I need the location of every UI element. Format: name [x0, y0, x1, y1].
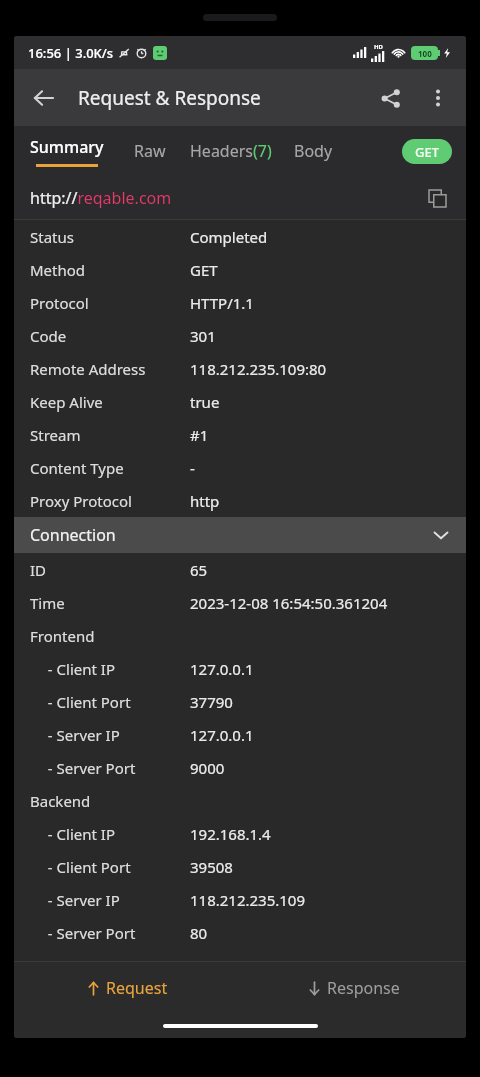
button[interactable]: Connection [14, 517, 466, 553]
staticText: 118.212.235.109 [190, 890, 306, 910]
staticText: Status [30, 227, 190, 247]
button[interactable]: GET [402, 139, 452, 164]
staticText: ID [30, 560, 190, 580]
staticText: - Server Port [40, 758, 190, 778]
button[interactable]: Keep Alive [14, 385, 466, 418]
staticText: 127.0.0.1 [190, 725, 254, 745]
staticText: Frontend [30, 626, 95, 646]
staticText: - Client IP [40, 824, 190, 844]
staticText: - Server IP [40, 890, 190, 910]
staticText: Content Type [30, 458, 190, 478]
button[interactable]: Request [14, 962, 240, 1014]
staticText: HTTP/1.1 [190, 293, 254, 313]
button[interactable]: Status [14, 220, 466, 253]
staticText: Method [30, 260, 190, 280]
staticText: - Client IP [40, 659, 190, 679]
button[interactable]: Summary [14, 136, 120, 167]
staticText: 9000 [190, 758, 225, 778]
staticText: #1 [190, 425, 209, 445]
button[interactable]: Protocol [14, 286, 466, 319]
staticText: GET [190, 260, 218, 280]
staticText: Proxy Protocol [30, 491, 190, 511]
staticText: Completed [190, 227, 268, 247]
staticText: Remote Address [30, 359, 190, 379]
button[interactable]: Share [366, 74, 414, 122]
button[interactable]: - Server IP [14, 718, 466, 751]
button[interactable]: Proxy Protocol [14, 484, 466, 517]
staticText: HD [374, 43, 383, 51]
staticText: Backend [30, 791, 91, 811]
staticText: Request [106, 977, 168, 999]
staticText: Raw [134, 140, 166, 162]
staticText: 39508 [190, 857, 233, 877]
button[interactable]: - Server IP [14, 883, 466, 916]
button[interactable]: Back [22, 76, 66, 120]
button[interactable]: Method [14, 253, 466, 286]
button[interactable]: - Client Port [14, 850, 466, 883]
button[interactable]: - Server Port [14, 916, 466, 949]
staticText: true [190, 392, 220, 412]
button[interactable]: Content Type [14, 451, 466, 484]
button[interactable]: Body [282, 132, 345, 170]
staticText: Code [30, 326, 190, 346]
button[interactable]: Backend [14, 784, 466, 817]
staticText: 118.212.235.109:80 [190, 359, 327, 379]
staticText: Response [327, 977, 400, 999]
button[interactable]: - Client IP [14, 652, 466, 685]
staticText: Time [30, 593, 190, 613]
staticText: - Server IP [40, 725, 190, 745]
staticText: 100 [418, 48, 432, 59]
button[interactable]: Remote Address [14, 352, 466, 385]
staticText: 127.0.0.1 [190, 659, 254, 679]
button[interactable]: - Server Port [14, 751, 466, 784]
staticText: - Client Port [40, 692, 190, 712]
staticText: 80 [190, 923, 208, 943]
staticText: Request & Response [78, 85, 261, 111]
button[interactable]: Time [14, 586, 466, 619]
button[interactable]: - Client Port [14, 685, 466, 718]
button[interactable]: Code [14, 319, 466, 352]
button[interactable]: Headers(7) [180, 132, 282, 170]
button[interactable]: Raw [120, 132, 180, 170]
staticText: http [190, 491, 220, 511]
button[interactable]: Response [240, 962, 466, 1014]
staticText: - Server Port [40, 923, 190, 943]
button[interactable]: - Client IP [14, 817, 466, 850]
staticText: Summary [30, 136, 104, 158]
button[interactable]: Copy URL [418, 179, 456, 217]
staticText: Protocol [30, 293, 190, 313]
staticText: - [190, 458, 195, 478]
staticText: 37790 [190, 692, 233, 712]
staticText: Keep Alive [30, 392, 190, 412]
button[interactable]: ID [14, 553, 466, 586]
staticText: http://reqable.com [30, 187, 172, 209]
staticText: 65 [190, 560, 208, 580]
staticText: Connection [30, 524, 116, 546]
button[interactable]: Frontend [14, 619, 466, 652]
staticText: GET [415, 143, 439, 161]
staticText: 301 [190, 326, 216, 346]
staticText: Stream [30, 425, 190, 445]
staticText: 2023-12-08 16:54:50.361204 [190, 593, 388, 613]
staticText: Body [294, 140, 333, 162]
button[interactable]: More options [414, 74, 462, 122]
staticText: 16:56 | 3.0K/s [28, 44, 114, 62]
staticText: Headers(7) [190, 140, 272, 162]
staticText: 192.168.1.4 [190, 824, 271, 844]
staticText: - Client Port [40, 857, 190, 877]
button[interactable]: Stream [14, 418, 466, 451]
